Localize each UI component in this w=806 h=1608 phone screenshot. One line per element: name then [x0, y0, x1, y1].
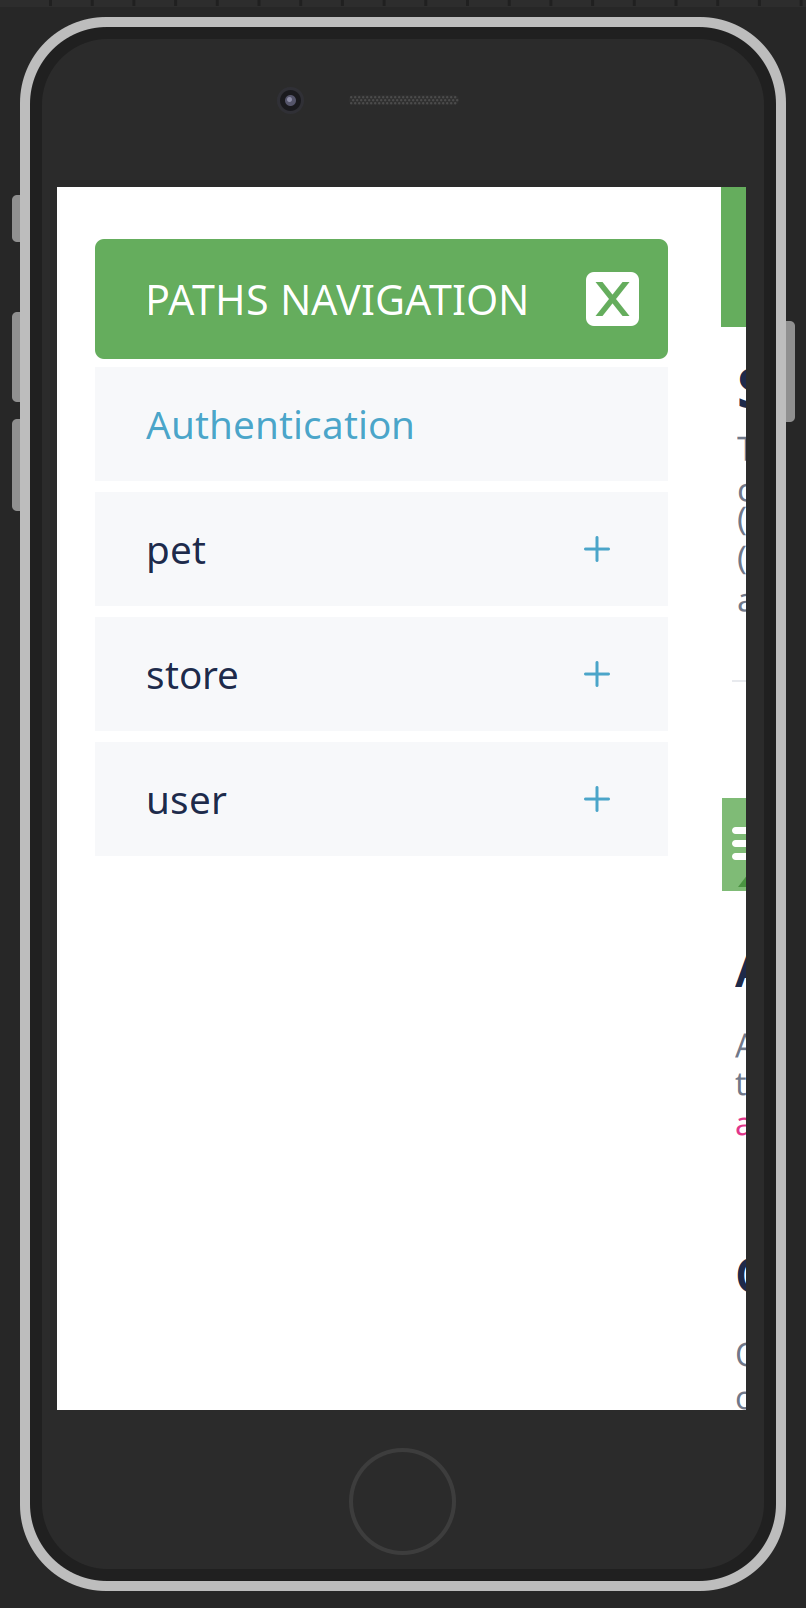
- staticText: Operations: [735, 1242, 806, 1306]
- staticText: Open an endpoint from the list: [735, 1333, 806, 1375]
- button[interactable]: user: [95, 742, 668, 856]
- staticText: user: [146, 773, 227, 825]
- button[interactable]: Authentication: [95, 367, 668, 481]
- staticText: (see the Swagger docs for details): [737, 496, 806, 540]
- staticText: PATHS NAVIGATION: [145, 272, 529, 326]
- staticText: store: [146, 648, 239, 700]
- staticText: (or the OpenAPI specification): [737, 535, 806, 579]
- staticText: This is a sample server Petstore server.: [737, 426, 806, 470]
- staticText: around the world.: [737, 577, 806, 621]
- staticText: Authentication: [735, 936, 806, 1000]
- button[interactable]: pet: [95, 492, 668, 606]
- staticText: Authentication: [146, 398, 415, 450]
- staticText: pet: [146, 523, 206, 575]
- staticText: the endpoints. Send the header: [735, 1062, 806, 1104]
- button[interactable]: PATHS NAVIGATION: [95, 239, 668, 359]
- staticText: configured with a sample specification.: [737, 467, 806, 511]
- staticText: Swagger Petstore: [737, 352, 806, 422]
- button[interactable]: store: [95, 617, 668, 731]
- button[interactable]: Toggle paths navigation: [722, 798, 804, 891]
- staticText: API key authorization to access: [735, 1024, 806, 1066]
- staticText: on the left to get started.: [735, 1376, 806, 1418]
- staticText: api_key: [735, 1102, 806, 1144]
